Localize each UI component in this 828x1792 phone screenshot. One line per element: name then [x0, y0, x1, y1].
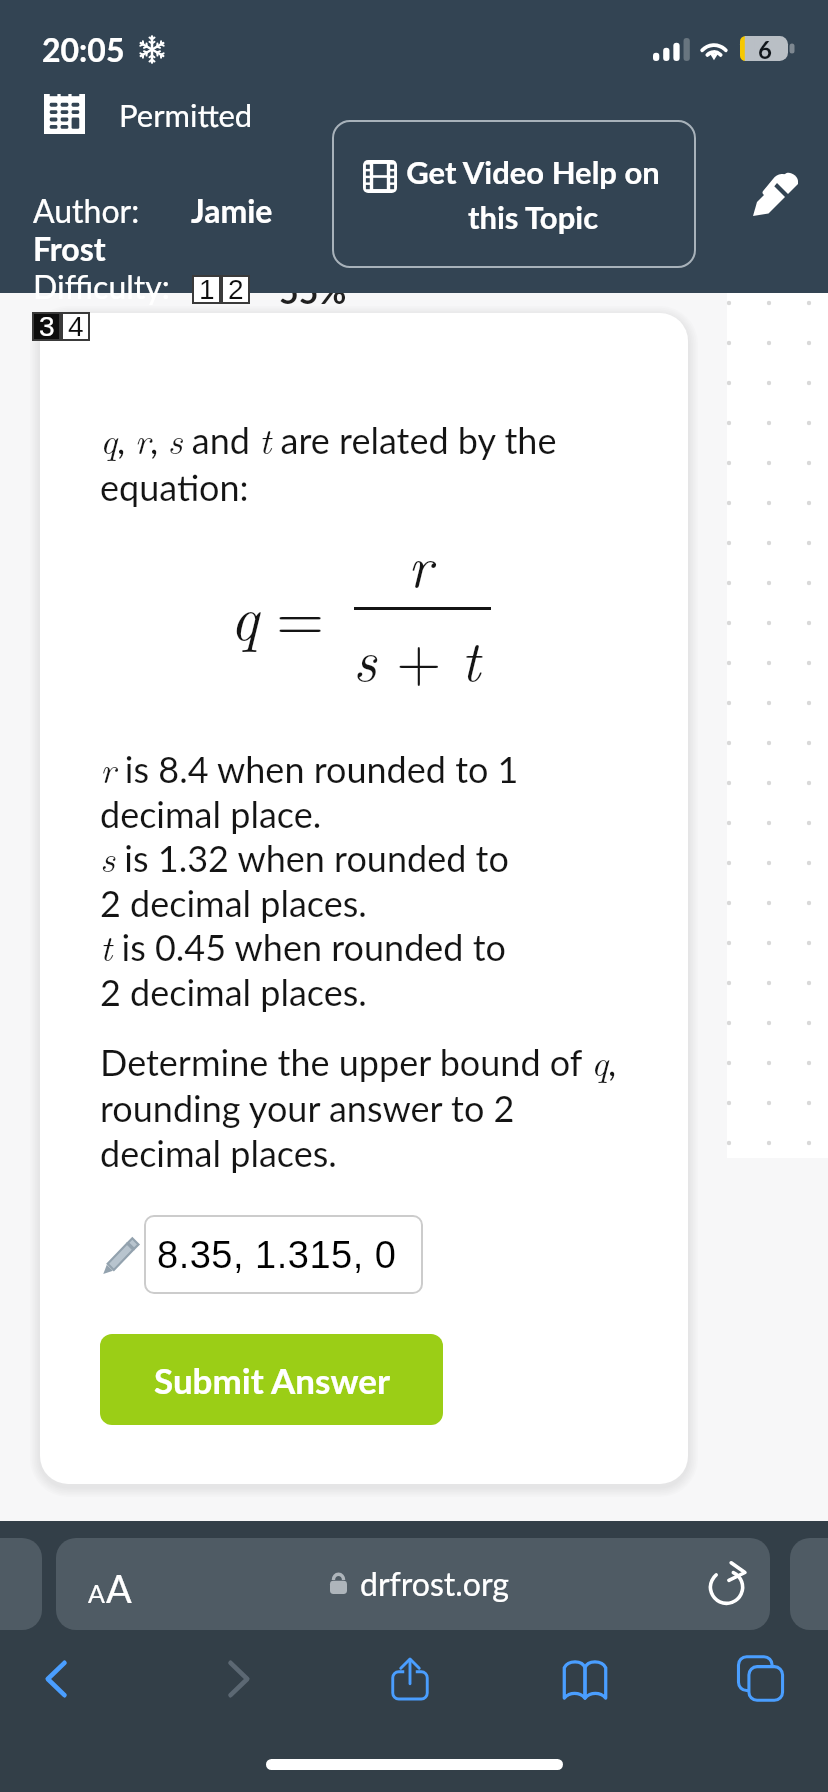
- staticText: 2: [228, 274, 244, 303]
- button[interactable]: Tabs: [716, 1640, 812, 1720]
- staticText: r: [330, 522, 510, 604]
- staticText: A: [88, 1578, 105, 1608]
- button[interactable]: Forward: [189, 1639, 285, 1719]
- staticText: q, r, s and t are related by the equatio…: [100, 412, 600, 509]
- button[interactable]: Reload: [704, 1561, 750, 1607]
- staticText: Frost: [33, 229, 106, 267]
- button[interactable]: Annotate: [750, 169, 800, 219]
- staticText: Difficulty:: [33, 267, 170, 305]
- staticText: 20:05: [42, 30, 125, 68]
- staticText: drfrost.org: [360, 1564, 509, 1602]
- staticText: s: [353, 616, 377, 698]
- staticText: Get Video Help on this Topic: [378, 153, 688, 236]
- staticText: A: [106, 1565, 132, 1611]
- button[interactable]: 8.35, 1.315, 0: [144, 1215, 423, 1294]
- staticText: Submit Answer: [154, 1359, 390, 1401]
- staticText: Determine the upper bound of q, rounding…: [100, 1034, 630, 1175]
- staticText: +: [377, 616, 461, 698]
- staticText: 8.35, 1.315, 0: [157, 1234, 397, 1276]
- button[interactable]: Get Video Help on this Topic: [332, 120, 696, 268]
- staticText: q: [230, 570, 259, 658]
- button[interactable]: Bookmarks: [537, 1639, 633, 1719]
- staticText: =: [276, 570, 325, 658]
- button[interactable]: Permitted: [44, 94, 253, 134]
- button[interactable]: Share: [362, 1639, 458, 1719]
- staticText: 55%: [279, 270, 347, 311]
- staticText: Author:: [33, 191, 140, 229]
- staticText: t: [461, 616, 481, 698]
- button[interactable]: Submit Answer: [100, 1334, 443, 1425]
- staticText: Permitted: [119, 96, 253, 133]
- staticText: Jamie: [191, 191, 273, 229]
- staticText: 1: [199, 274, 215, 303]
- button[interactable]: Back: [10, 1639, 106, 1719]
- staticText: 4: [68, 311, 84, 340]
- staticText: 6: [758, 35, 772, 64]
- button[interactable]: A: [56, 1538, 770, 1630]
- staticText: 3: [39, 311, 55, 340]
- staticText: r is 8.4 when rounded to 1 decimal place…: [100, 741, 660, 1013]
